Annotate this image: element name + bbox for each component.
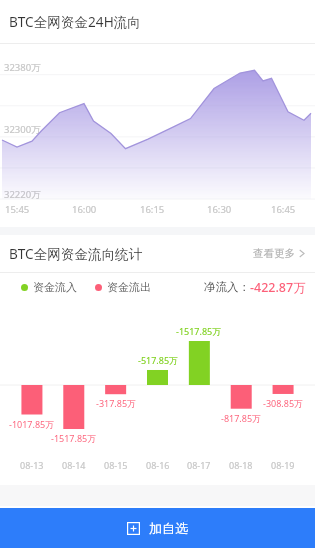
staticText: 加自选	[149, 520, 188, 536]
staticText: 32300万	[4, 123, 41, 136]
staticText: 查看更多	[253, 247, 295, 260]
staticText: 08-13	[20, 459, 44, 471]
staticText: -1017.85万	[9, 418, 55, 430]
staticText: 32220万	[4, 188, 41, 201]
staticText: 08-19	[271, 459, 295, 471]
staticText: -422.87万	[250, 279, 306, 296]
staticText: 08-18	[229, 459, 253, 471]
button[interactable]: 查看更多	[252, 242, 306, 265]
staticText: -817.85万	[221, 412, 262, 424]
staticText: -517.85万	[138, 354, 179, 366]
staticText: 16:30	[207, 203, 232, 216]
staticText: -1517.85万	[51, 432, 97, 444]
staticText: 08-16	[146, 459, 170, 471]
staticText: 资金流入	[33, 280, 77, 294]
staticText: 32380万	[4, 61, 41, 74]
staticText: 16:15	[140, 203, 165, 216]
staticText: 净流入：	[204, 280, 250, 294]
staticText: 08-14	[62, 459, 86, 471]
staticText: -308.85万	[263, 397, 304, 409]
staticText: -1517.85万	[176, 325, 222, 337]
staticText: 资金流出	[107, 280, 151, 294]
button[interactable]: 资金流出	[95, 280, 151, 294]
button[interactable]: 资金流入	[21, 280, 77, 294]
staticText: 16:45	[271, 203, 296, 216]
staticText: 15:45	[5, 203, 30, 216]
staticText: -317.85万	[96, 397, 137, 409]
staticText: BTC全网资金24H流向	[9, 12, 141, 31]
button[interactable]: 加自选	[0, 508, 315, 548]
staticText: 16:00	[72, 203, 97, 216]
staticText: 08-17	[187, 459, 211, 471]
staticText: 08-15	[104, 459, 128, 471]
staticText: BTC全网资金流向统计	[9, 244, 143, 263]
